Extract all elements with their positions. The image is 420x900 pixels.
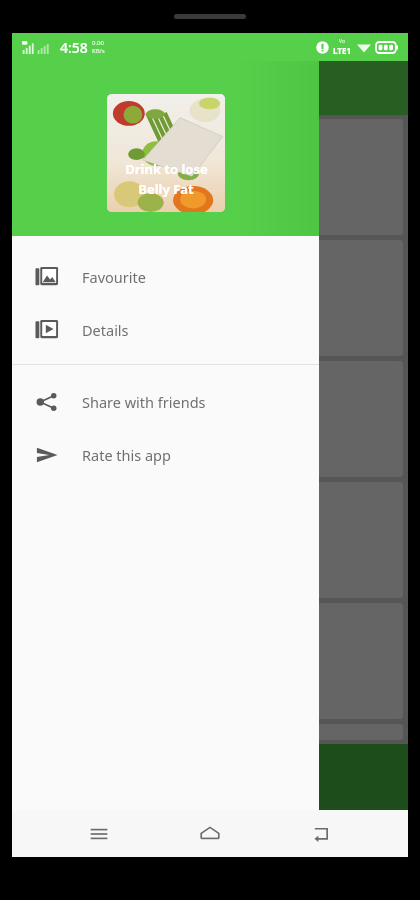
staticText: Share with friends [82,392,206,412]
button[interactable]: Back [297,810,345,857]
button[interactable]: Share with friends [12,375,319,428]
button[interactable]: Home [186,810,234,857]
staticText: Drink to lose [125,160,208,178]
staticText: Vo [339,38,345,45]
button[interactable]: Favourite [12,250,319,303]
staticText: 0.00 [92,39,104,47]
staticText: 4:58 [60,38,88,57]
staticText: Favourite [82,267,146,287]
staticText: Rate this app [82,445,171,465]
staticText: Details [82,320,129,340]
staticText: KB/s [92,47,105,55]
staticText: LTE1 [333,45,351,56]
staticText: Belly Fat [138,180,194,198]
button[interactable]: Details [12,303,319,356]
button[interactable]: App icon [107,94,225,212]
button[interactable]: Recents [75,810,123,857]
button[interactable]: Rate this app [12,428,319,481]
